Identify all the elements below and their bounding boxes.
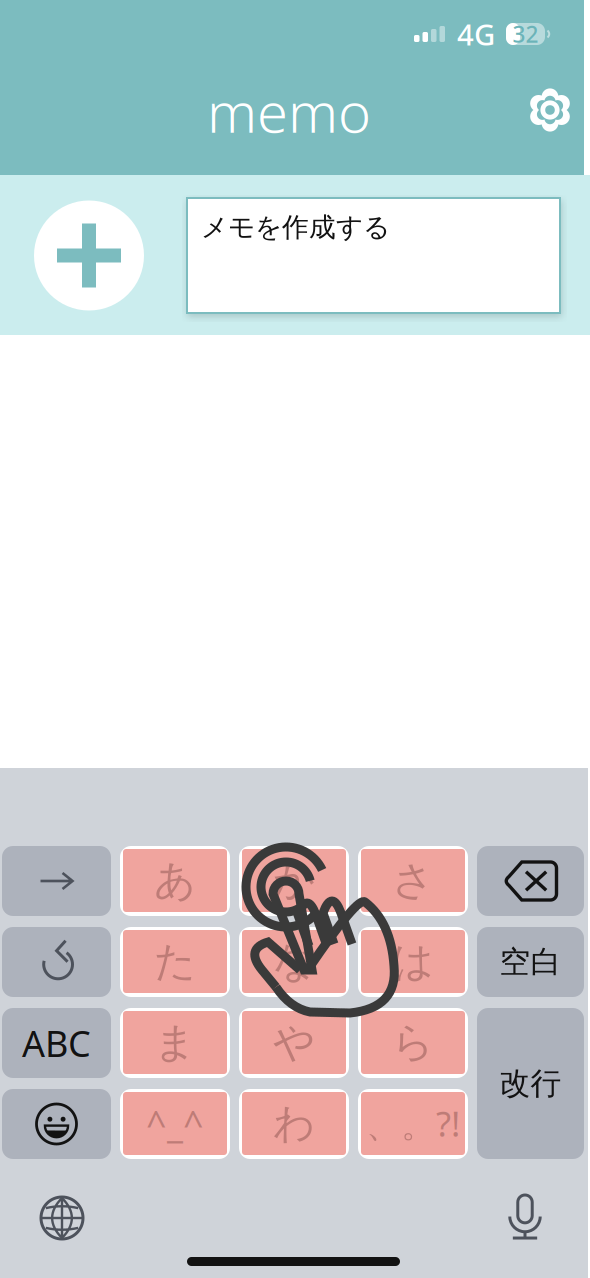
staticText: さ xyxy=(392,855,434,906)
button[interactable]: か xyxy=(239,846,349,916)
button[interactable] xyxy=(2,1089,111,1159)
button[interactable]: あ xyxy=(120,846,230,916)
staticText: 32 xyxy=(512,19,538,49)
button[interactable]: 改行 xyxy=(477,1008,584,1159)
staticText: ^_^ xyxy=(146,1100,204,1147)
staticText: は xyxy=(392,936,434,987)
button[interactable]: な xyxy=(239,927,349,997)
staticText: メモを作成する xyxy=(201,211,390,244)
button[interactable]: は xyxy=(358,927,468,997)
staticText: memo xyxy=(207,74,371,148)
button[interactable]: Dictate xyxy=(506,1194,544,1242)
button[interactable] xyxy=(2,846,111,916)
staticText: 、。?! xyxy=(366,1100,460,1147)
staticText: た xyxy=(154,936,196,987)
staticText: ま xyxy=(154,1017,196,1068)
button[interactable] xyxy=(2,927,111,997)
staticText: な xyxy=(273,936,315,987)
staticText: か xyxy=(273,855,315,906)
staticText: あ xyxy=(154,855,196,906)
staticText: わ xyxy=(273,1098,315,1149)
button[interactable]: ABC xyxy=(2,1008,111,1078)
button[interactable]: さ xyxy=(358,846,468,916)
button[interactable]: Settings xyxy=(516,76,584,144)
button[interactable]: 空白 xyxy=(477,927,584,997)
button[interactable]: メモを作成する xyxy=(187,198,560,313)
button[interactable]: た xyxy=(120,927,230,997)
staticText: 4G xyxy=(457,14,495,53)
staticText: 空白 xyxy=(499,943,561,981)
button[interactable]: ^_^ xyxy=(120,1089,230,1159)
button[interactable]: Next keyboard xyxy=(41,1197,83,1239)
button[interactable]: New memo xyxy=(34,200,144,310)
button[interactable]: ま xyxy=(120,1008,230,1078)
button[interactable]: や xyxy=(239,1008,349,1078)
staticText: ら xyxy=(392,1017,434,1068)
staticText: や xyxy=(273,1017,315,1068)
staticText: 改行 xyxy=(499,1065,561,1102)
button[interactable]: ら xyxy=(358,1008,468,1078)
button[interactable]: わ xyxy=(239,1089,349,1159)
button[interactable]: 、。?! xyxy=(358,1089,468,1159)
button[interactable] xyxy=(477,846,584,916)
staticText: ABC xyxy=(22,1019,91,1067)
